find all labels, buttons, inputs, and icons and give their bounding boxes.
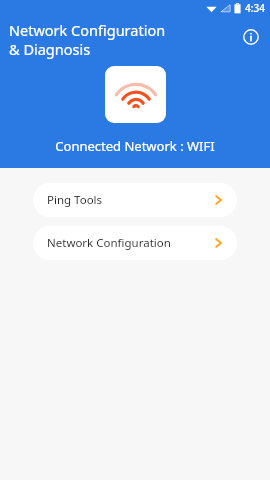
staticText: Network Configuration <box>47 235 215 251</box>
button[interactable]: Info <box>239 25 263 49</box>
button[interactable]: Ping Tools <box>33 183 237 217</box>
button[interactable]: Network Configuration <box>33 226 237 260</box>
staticText: Connected Network : WIFI <box>0 137 270 155</box>
staticText: 4:34 <box>245 1 265 15</box>
staticText: Network Configuration & Diagnosis <box>9 20 239 59</box>
staticText: Ping Tools <box>47 192 215 208</box>
